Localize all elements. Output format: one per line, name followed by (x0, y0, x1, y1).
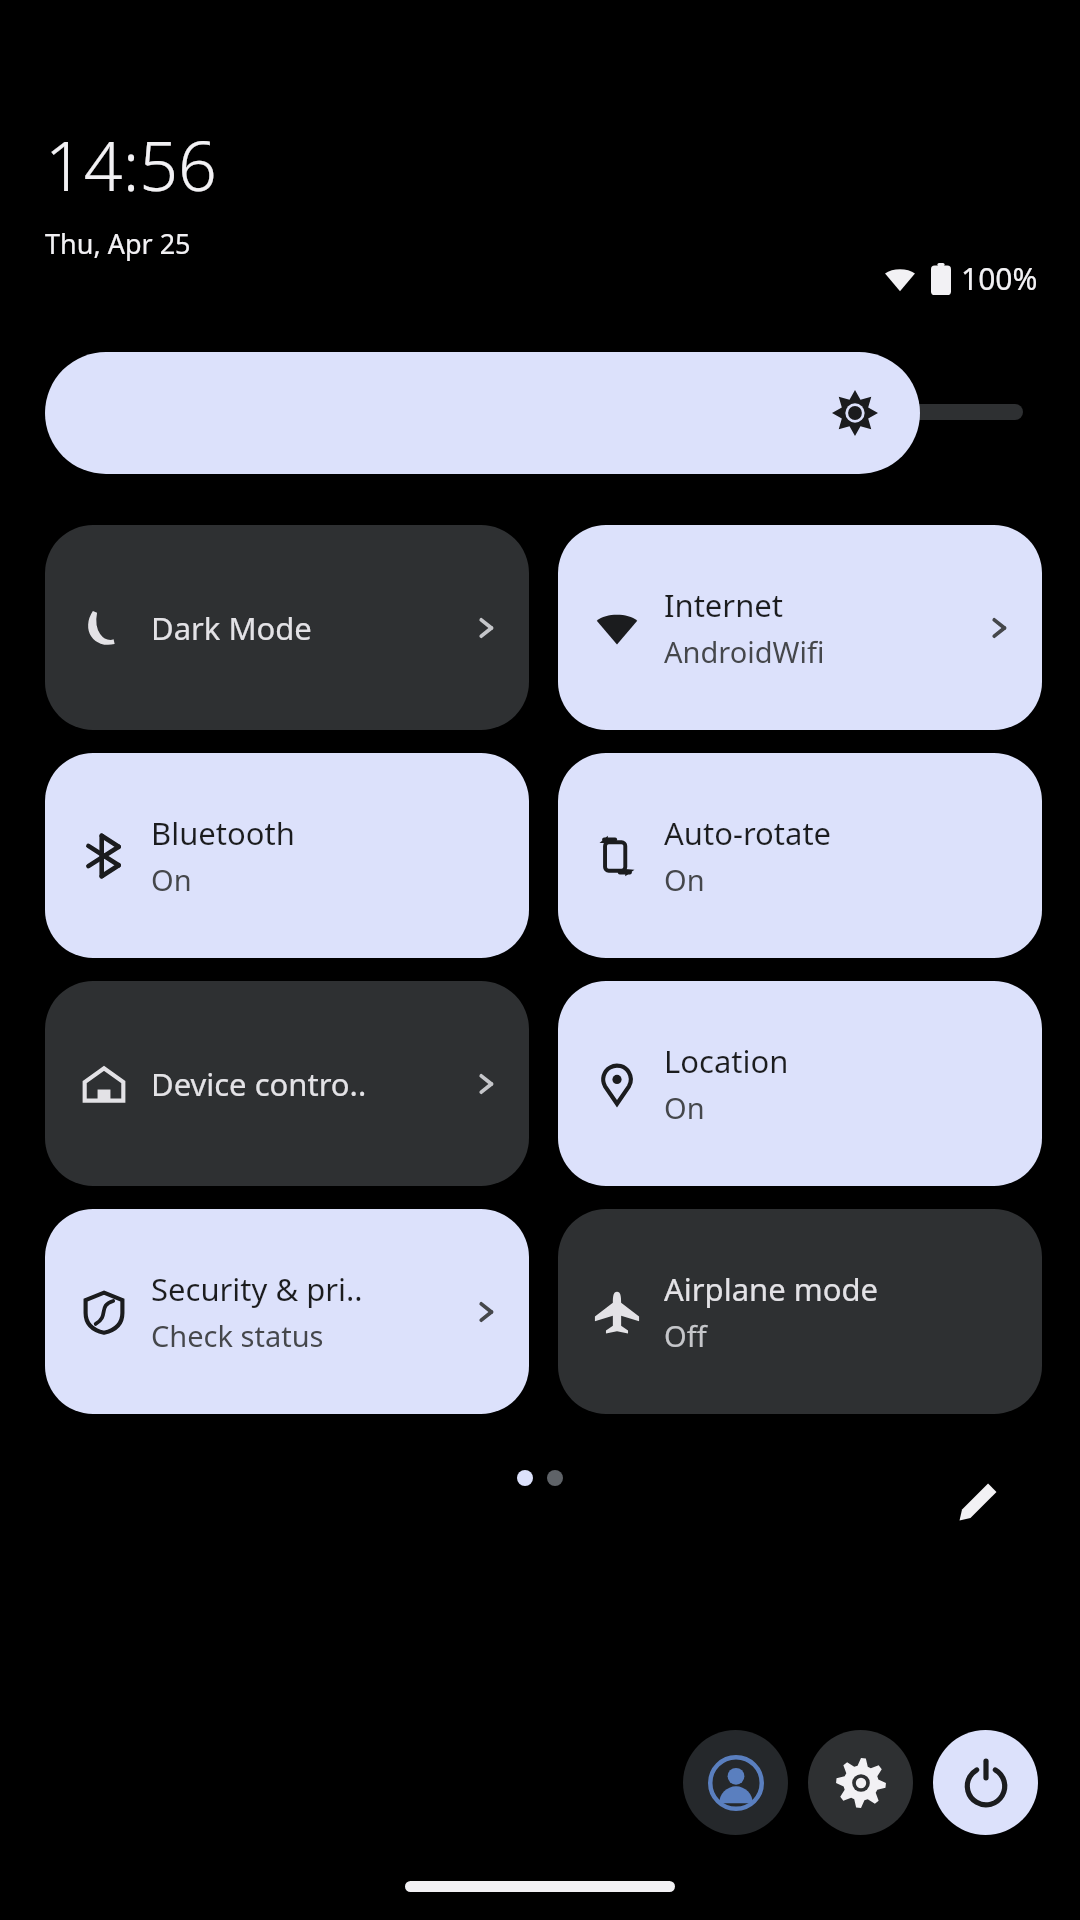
button[interactable]: Internet (558, 525, 1042, 730)
staticText: Thu, Apr 25 (45, 225, 191, 262)
staticText: Off (664, 1316, 707, 1355)
button[interactable]: Location (558, 981, 1042, 1186)
button[interactable]: Airplane mode (558, 1209, 1042, 1414)
button[interactable]: Auto-rotate (558, 753, 1042, 958)
staticText: Security & pri.. (151, 1268, 363, 1310)
staticText: Airplane mode (664, 1268, 879, 1310)
button[interactable]: Brightness (45, 352, 920, 474)
button[interactable]: Device contro.. (45, 981, 529, 1186)
button[interactable]: Bluetooth (45, 753, 529, 958)
staticText: Location (664, 1040, 789, 1082)
staticText: On (664, 1088, 705, 1127)
staticText: On (151, 860, 192, 899)
button[interactable]: Edit tiles (946, 1470, 1010, 1534)
button[interactable]: Dark Mode (45, 525, 529, 730)
button[interactable]: Settings (808, 1730, 913, 1835)
staticText: 100% (961, 258, 1038, 299)
staticText: On (664, 860, 705, 899)
staticText: Dark Mode (151, 607, 312, 649)
button[interactable]: Security & pri.. (45, 1209, 529, 1414)
staticText: AndroidWifi (664, 632, 825, 671)
staticText: Device contro.. (151, 1063, 367, 1105)
button[interactable]: Power (933, 1730, 1038, 1835)
staticText: Internet (664, 584, 783, 626)
staticText: Check status (151, 1316, 324, 1355)
staticText: 14:56 (45, 118, 217, 211)
staticText: Bluetooth (151, 812, 295, 854)
button[interactable]: User (683, 1730, 788, 1835)
staticText: Auto-rotate (664, 812, 832, 854)
